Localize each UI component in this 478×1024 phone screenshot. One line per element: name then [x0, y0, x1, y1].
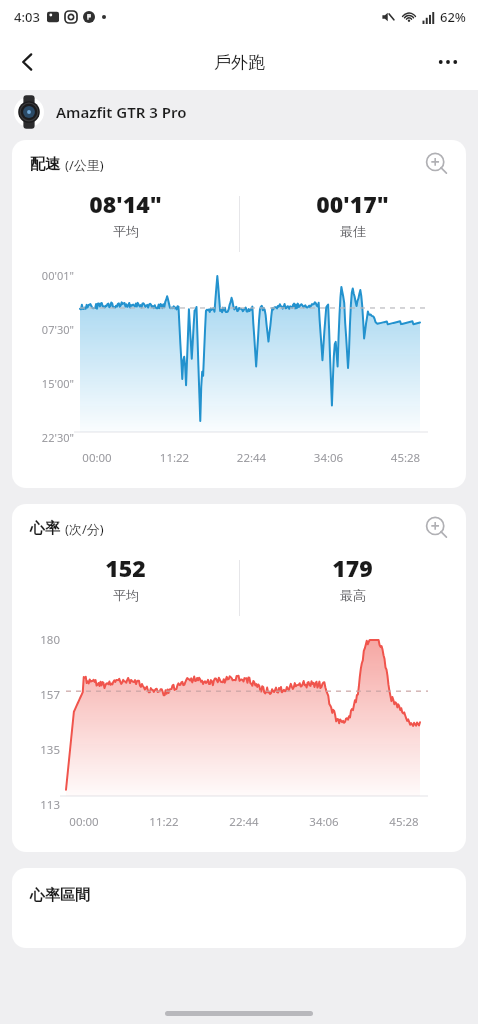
staticText: 平均 [113, 587, 139, 603]
staticText: 152 [105, 552, 146, 583]
staticText: 179 [332, 552, 373, 583]
staticText: 30'00" [12, 484, 74, 488]
staticText: 00'01" [12, 268, 74, 283]
button[interactable]: 心率區間 [12, 868, 466, 948]
staticText: 22:44 [213, 450, 290, 466]
button[interactable]: 配速 [12, 140, 466, 488]
staticText: 22:44 [204, 814, 284, 830]
staticText: 心率區間 [30, 886, 90, 905]
staticText: 4:03 [14, 8, 40, 26]
staticText: 11:22 [136, 450, 213, 466]
staticText: 135 [12, 742, 60, 758]
staticText: 11:22 [124, 814, 204, 830]
staticText: 157 [12, 687, 60, 703]
button[interactable]: Amazfit GTR 3 Pro [0, 90, 478, 134]
staticText: 34:06 [290, 450, 367, 466]
staticText: 62% [440, 8, 466, 26]
staticText: 00:00 [44, 814, 124, 830]
staticText: 45:28 [364, 814, 444, 830]
button[interactable]: More options [426, 40, 470, 84]
staticText: 45:28 [367, 450, 444, 466]
staticText: 00'17" [316, 188, 389, 219]
staticText: 平均 [113, 223, 139, 239]
staticText: 22'30" [12, 430, 74, 445]
staticText: 08'14" [89, 188, 162, 219]
button[interactable]: Back [6, 40, 50, 84]
button[interactable]: Expand chart [420, 511, 454, 545]
button[interactable]: Expand chart [420, 147, 454, 181]
staticText: 戶外跑 [214, 52, 265, 73]
staticText: 配速 [30, 155, 60, 174]
staticText: (/公里) [65, 156, 104, 174]
staticText: 113 [12, 797, 60, 813]
staticText: 180 [12, 632, 60, 648]
staticText: 34:06 [284, 814, 364, 830]
staticText: 15'00" [12, 376, 74, 391]
staticText: 最佳 [340, 223, 366, 239]
staticText: (次/分) [65, 520, 104, 538]
staticText: Amazfit GTR 3 Pro [56, 102, 187, 122]
staticText: 最高 [340, 587, 366, 603]
button[interactable]: 心率 [12, 504, 466, 852]
staticText: 00:00 [58, 450, 136, 466]
staticText: 心率 [30, 519, 60, 538]
staticText: 07'30" [12, 322, 74, 337]
